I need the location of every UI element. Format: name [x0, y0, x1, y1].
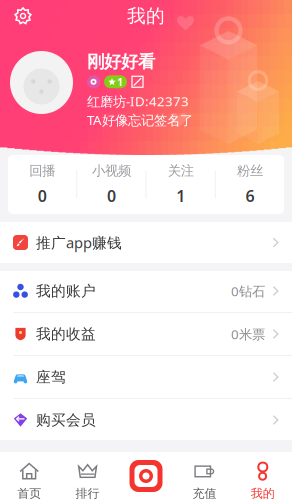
staticText: 1 [176, 185, 185, 206]
button[interactable]: 粉丝 [216, 155, 284, 214]
button[interactable]: Settings [6, 1, 40, 31]
button[interactable]: 排行 [58, 452, 117, 500]
staticText: 我的收益 [36, 325, 96, 343]
button[interactable]: 购买会员 [0, 399, 292, 441]
button[interactable]: 推广app赚钱 [0, 221, 292, 263]
staticText: 红磨坊-ID:42373 [87, 92, 189, 110]
staticText: 推广app赚钱 [36, 233, 122, 252]
staticText: 0 [107, 185, 116, 206]
staticText: 排行 [76, 486, 100, 500]
button[interactable]: 小视频 [77, 155, 145, 214]
staticText: 1 [117, 75, 123, 89]
button[interactable]: 我的 [234, 452, 292, 500]
staticText: 我的 [251, 486, 275, 500]
staticText: 我的账户 [36, 282, 96, 300]
staticText: 关注 [168, 163, 194, 179]
staticText: 小视频 [92, 163, 131, 179]
staticText: 回播 [29, 163, 55, 179]
staticText: TA好像忘记签名了 [87, 111, 193, 129]
button[interactable]: 我的账户 [0, 270, 292, 312]
button[interactable]: 我的收益 [0, 313, 292, 355]
staticText: 0钻石 [231, 282, 265, 300]
staticText: 刚好好看 [87, 51, 155, 72]
staticText: 充值 [192, 486, 216, 500]
button[interactable]: 座驾 [0, 356, 292, 398]
staticText: 6 [245, 185, 254, 206]
button[interactable]: 充值 [175, 452, 234, 500]
staticText: 购买会员 [36, 411, 96, 429]
staticText: 粉丝 [237, 163, 263, 179]
button[interactable]: 首页 [0, 452, 58, 500]
button[interactable]: Go live [117, 452, 175, 500]
staticText: 我的 [127, 4, 165, 27]
button[interactable]: 关注 [146, 155, 215, 214]
button[interactable]: Edit profile [131, 75, 144, 88]
button[interactable]: Avatar [10, 51, 73, 114]
staticText: 首页 [17, 486, 41, 500]
staticText: 0 [38, 185, 47, 206]
button[interactable]: 回播 [8, 155, 76, 214]
staticText: 座驾 [36, 368, 66, 386]
staticText: 0米票 [231, 325, 265, 343]
